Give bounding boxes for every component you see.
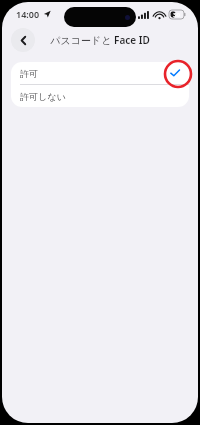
staticText: 14:00 [16,8,40,20]
staticText: 30 [173,11,180,19]
staticText: パスコードと Face ID [2,33,198,47]
staticText: 許可 [20,68,38,79]
button[interactable]: Back [11,28,35,52]
staticText: 許可しない [20,91,66,102]
button[interactable]: 許可 [11,62,189,84]
button[interactable]: 許可しない [11,85,189,107]
